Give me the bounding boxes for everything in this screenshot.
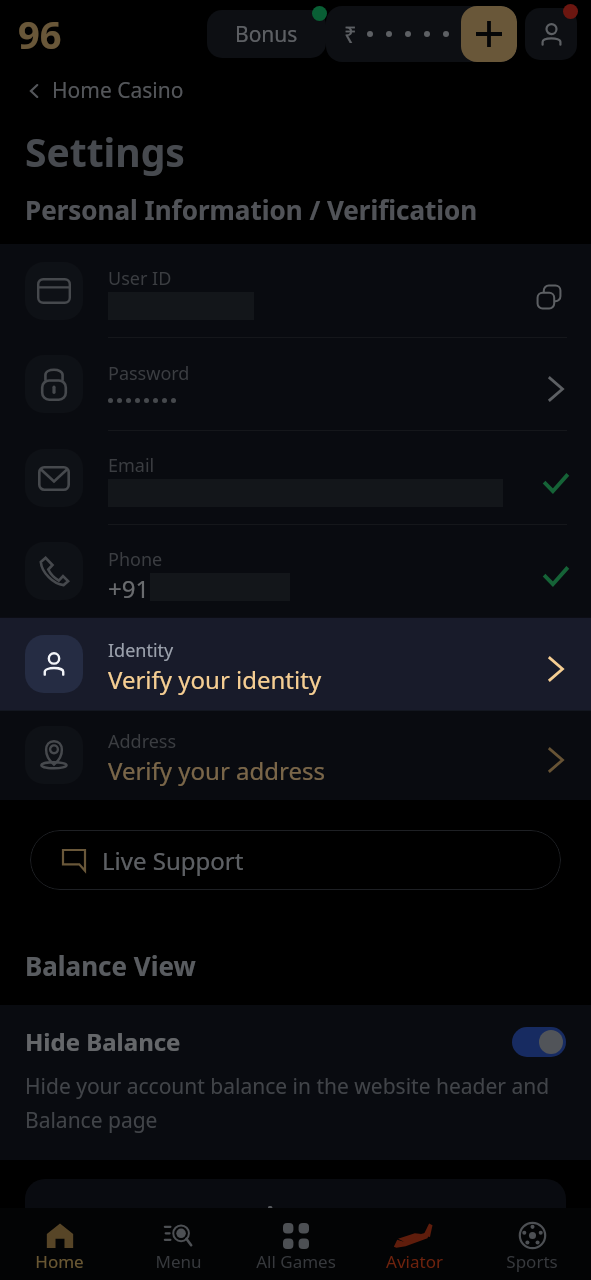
staticText: ₹ (344, 19, 357, 49)
button[interactable]: Home Casino (25, 76, 184, 105)
staticText: 96 (18, 8, 62, 60)
staticText: Hide your account balance in the website… (25, 1072, 566, 1134)
button[interactable]: Phone (0, 525, 591, 617)
button[interactable]: Aviator (355, 1208, 473, 1280)
button[interactable]: User ID (0, 244, 591, 337)
staticText: Aviator (386, 1250, 443, 1272)
staticText: Identity (108, 638, 174, 663)
button[interactable]: Identity (0, 617, 591, 710)
staticText: Settings (25, 125, 185, 178)
staticText: User ID (108, 266, 172, 291)
button[interactable]: All Games (237, 1208, 355, 1280)
staticText: Login Setup (219, 1199, 373, 1234)
button[interactable]: Password (0, 338, 591, 430)
staticText: Bonus (235, 20, 298, 49)
staticText: Verify your address (108, 754, 325, 787)
button[interactable]: Bonus (207, 10, 326, 58)
staticText: Email (108, 453, 155, 478)
staticText: Phone (108, 547, 163, 572)
staticText: All Games (256, 1250, 336, 1272)
staticText: Verify your identity (108, 663, 322, 696)
staticText: +91 (108, 572, 150, 602)
button[interactable]: Menu (119, 1208, 237, 1280)
button[interactable]: Deposit (461, 6, 517, 62)
button[interactable]: Profile (525, 8, 577, 60)
staticText: Balance View (25, 948, 196, 983)
button[interactable]: Sports (473, 1208, 591, 1280)
staticText: Home (35, 1250, 84, 1272)
staticText: Home Casino (52, 76, 184, 105)
button[interactable]: Copy user ID (526, 274, 572, 320)
button[interactable]: Home (0, 1208, 119, 1280)
staticText: Sports (506, 1250, 558, 1272)
staticText: Personal Information / Verification (25, 192, 478, 227)
button[interactable]: Address (0, 710, 591, 800)
button[interactable]: Live Support (30, 830, 561, 890)
staticText: Menu (155, 1250, 202, 1272)
button[interactable]: Email (0, 431, 591, 524)
button[interactable]: Hide balance toggle (512, 1027, 566, 1057)
staticText: Address (108, 729, 177, 754)
staticText: Hide Balance (25, 1025, 181, 1058)
button[interactable]: ₹ (326, 19, 461, 49)
staticText: Password (108, 361, 190, 386)
staticText: Live Support (102, 844, 244, 877)
